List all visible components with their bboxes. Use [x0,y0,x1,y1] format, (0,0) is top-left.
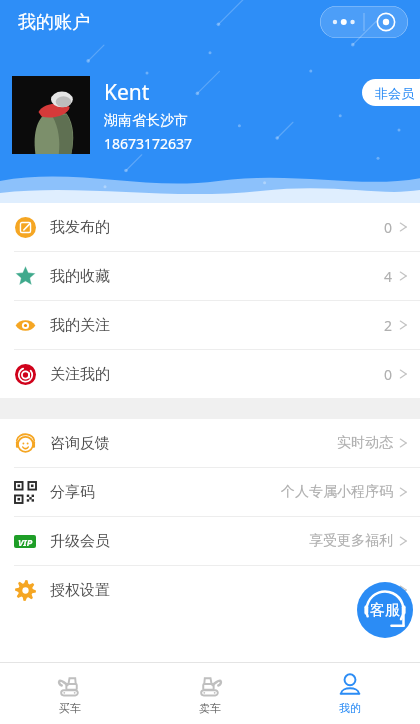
staticText: 客服 [370,601,400,620]
staticText: 我的账户 [18,11,90,34]
staticText: 非会员 [375,85,414,101]
staticText: 2 [384,316,393,335]
staticText: 关注我的 [50,365,110,384]
staticText: VIP [18,536,33,548]
staticText: 分享码 [50,483,95,502]
button[interactable]: 授权设置 [0,566,420,614]
button[interactable]: VIP [0,517,420,565]
staticText: 买车 [59,701,81,715]
staticText: 0 [384,218,393,237]
button[interactable]: 菜单 [320,6,408,38]
staticText: 4 [384,267,393,286]
staticText: 我的收藏 [50,267,110,286]
button[interactable]: 关注我的 [0,350,420,398]
staticText: 个人专属小程序码 [281,483,393,501]
button[interactable]: 分享码 [0,468,420,516]
button[interactable]: 卖车 [140,663,280,724]
button[interactable]: 买车 [0,663,140,724]
staticText: 18673172637 [104,134,193,153]
button[interactable]: 非会员 [362,79,420,106]
staticText: 卖车 [199,701,221,715]
staticText: 湖南省长沙市 [104,112,188,130]
button[interactable]: 我的 [280,663,420,724]
staticText: 享受更多福利 [309,532,393,550]
staticText: 实时动态 [337,434,393,452]
staticText: 咨询反馈 [50,434,110,453]
button[interactable]: 我的收藏 [0,252,420,300]
button[interactable]: 咨询反馈 [0,419,420,467]
button[interactable]: 我发布的 [0,203,420,251]
button[interactable]: Kent [12,76,193,154]
staticText: 我的关注 [50,316,110,335]
staticText: 升级会员 [50,532,110,551]
staticText: 我的 [339,701,361,715]
button[interactable]: 我的关注 [0,301,420,349]
staticText: Kent [104,78,150,107]
staticText: 授权设置 [50,581,110,600]
staticText: 我发布的 [50,218,110,237]
button[interactable]: 客服 [357,582,413,638]
staticText: 0 [384,365,393,384]
